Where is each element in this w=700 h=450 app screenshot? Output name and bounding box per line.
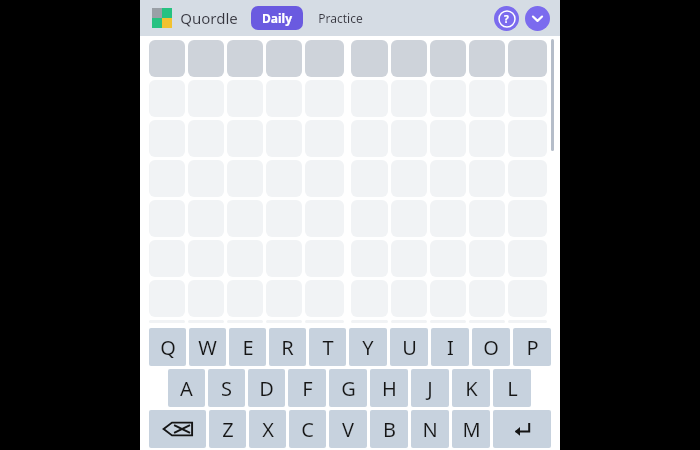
button[interactable]: I: [431, 328, 469, 366]
staticText: X: [262, 416, 274, 443]
button[interactable]: J: [411, 369, 449, 407]
staticText: I: [447, 334, 454, 361]
button[interactable]: A: [168, 369, 205, 407]
button[interactable]: Enter: [493, 410, 551, 448]
button[interactable]: P: [513, 328, 551, 366]
staticText: C: [301, 416, 314, 443]
button[interactable]: Practice: [313, 5, 368, 31]
staticText: V: [342, 416, 354, 443]
staticText: W: [198, 334, 217, 361]
button[interactable]: H: [370, 369, 408, 407]
button[interactable]: L: [493, 369, 531, 407]
button[interactable]: D: [248, 369, 285, 407]
staticText: L: [507, 375, 518, 402]
button[interactable]: R: [269, 328, 306, 366]
button[interactable]: T: [309, 328, 346, 366]
button[interactable]: F: [288, 369, 326, 407]
button[interactable]: Help: [494, 6, 519, 31]
staticText: M: [462, 416, 481, 443]
staticText: K: [465, 375, 478, 402]
button[interactable]: U: [390, 328, 428, 366]
staticText: Daily: [262, 10, 292, 26]
staticText: U: [402, 334, 417, 361]
staticText: P: [526, 334, 539, 361]
staticText: Practice: [318, 10, 363, 26]
staticText: J: [427, 375, 433, 402]
staticText: R: [281, 334, 294, 361]
button[interactable]: W: [189, 328, 226, 366]
button[interactable]: S: [208, 369, 245, 407]
button[interactable]: Q: [149, 328, 186, 366]
button[interactable]: Y: [349, 328, 387, 366]
button[interactable]: M: [452, 410, 490, 448]
button[interactable]: O: [472, 328, 510, 366]
staticText: E: [242, 334, 254, 361]
staticText: D: [259, 375, 274, 402]
staticText: Y: [362, 334, 374, 361]
button[interactable]: E: [229, 328, 266, 366]
button[interactable]: Z: [209, 410, 246, 448]
button[interactable]: X: [249, 410, 286, 448]
staticText: N: [422, 416, 438, 443]
staticText: S: [221, 375, 232, 402]
staticText: O: [483, 334, 499, 361]
button[interactable]: More options: [525, 6, 550, 31]
button[interactable]: Daily: [251, 6, 303, 30]
staticText: A: [180, 375, 193, 402]
staticText: F: [302, 375, 313, 402]
button[interactable]: B: [370, 410, 408, 448]
staticText: ?: [504, 12, 509, 26]
staticText: Q: [160, 334, 176, 361]
staticText: T: [322, 334, 334, 361]
staticText: Quordle: [180, 8, 238, 28]
staticText: G: [341, 375, 356, 402]
button[interactable]: N: [411, 410, 449, 448]
staticText: B: [383, 416, 396, 443]
staticText: H: [382, 375, 397, 402]
button[interactable]: V: [329, 410, 367, 448]
button[interactable]: K: [452, 369, 490, 407]
staticText: Z: [222, 416, 234, 443]
button[interactable]: G: [329, 369, 367, 407]
button[interactable]: Backspace: [149, 410, 206, 448]
button[interactable]: C: [289, 410, 326, 448]
